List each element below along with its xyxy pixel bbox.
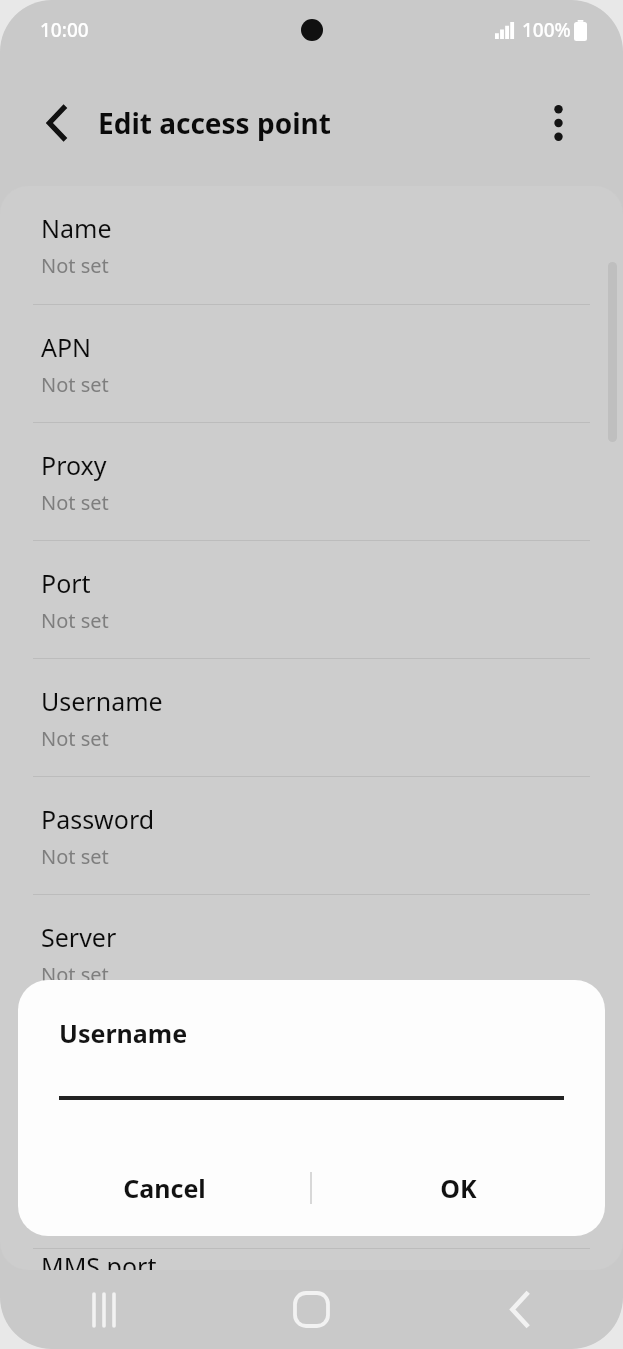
button[interactable]: MMS proxy	[0, 1130, 623, 1248]
button[interactable]: Back	[415, 1270, 623, 1349]
button[interactable]: Port	[0, 540, 623, 658]
staticText: Cancel	[123, 1171, 206, 1205]
staticText: Edit access point	[98, 104, 331, 142]
staticText: 100%	[522, 17, 571, 43]
staticText: Not set	[41, 489, 109, 516]
staticText: Proxy	[41, 448, 107, 482]
staticText: 10:00	[40, 17, 89, 43]
button[interactable]: Password	[0, 776, 623, 894]
staticText: Username	[59, 1016, 188, 1050]
staticText: Not set	[41, 607, 109, 634]
staticText: Not set	[41, 371, 109, 398]
button[interactable]: Username	[0, 658, 623, 776]
button[interactable]: Recent apps	[0, 1270, 207, 1349]
staticText: Not set	[41, 252, 109, 279]
staticText: MMS port	[41, 1249, 157, 1270]
staticText: Name	[41, 211, 112, 245]
staticText: OK	[440, 1171, 477, 1205]
button[interactable]: OK	[312, 1140, 605, 1236]
button[interactable]: APN	[0, 304, 623, 422]
button[interactable]: Proxy	[0, 422, 623, 540]
staticText: Port	[41, 566, 91, 600]
staticText: Server	[41, 920, 117, 954]
button[interactable]: Cancel	[18, 1140, 310, 1236]
button[interactable]: Server	[0, 894, 623, 1012]
button[interactable]: Home	[207, 1270, 415, 1349]
staticText: Not set	[41, 725, 109, 752]
staticText: MMSC	[41, 1038, 116, 1072]
staticText: Password	[41, 802, 155, 836]
staticText: Not set	[41, 1079, 109, 1106]
button[interactable]: Back	[22, 89, 90, 157]
button[interactable]: More options	[527, 92, 589, 154]
button[interactable]: Name	[0, 186, 623, 304]
staticText: Not set	[41, 843, 109, 870]
staticText: MMS proxy	[41, 1156, 173, 1190]
button[interactable]: MMSC	[0, 1012, 623, 1130]
staticText: APN	[41, 330, 92, 364]
button[interactable]: MMS port	[0, 1248, 623, 1270]
staticText: Username	[41, 684, 163, 718]
staticText: Not set	[41, 961, 109, 988]
